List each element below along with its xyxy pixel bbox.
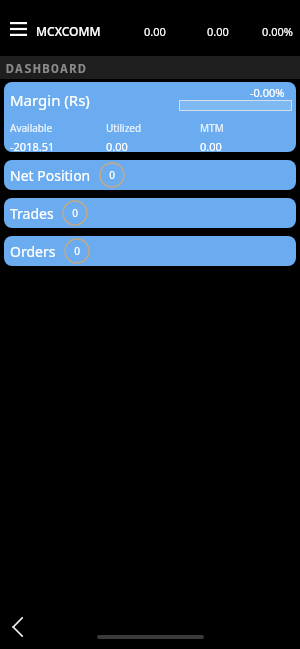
staticText: 0.00	[200, 139, 222, 152]
staticText: 0.00%	[262, 24, 293, 39]
staticText: DASHBOARD	[6, 59, 88, 77]
staticText: 0	[74, 244, 80, 258]
button[interactable]: Menu	[4, 18, 32, 40]
staticText: 0.00	[106, 139, 128, 152]
button[interactable]: Net Position	[4, 160, 296, 190]
staticText: 0.00	[207, 24, 229, 39]
button[interactable]: Margin (Rs)	[4, 82, 296, 152]
staticText: Utilized	[106, 121, 142, 135]
staticText: -0.00%	[250, 85, 285, 100]
button[interactable]: Trades	[4, 198, 296, 228]
staticText: 0.00	[144, 24, 166, 39]
staticText: -2018.51	[10, 139, 55, 152]
button[interactable]: Orders	[4, 236, 296, 266]
staticText: Available	[10, 121, 53, 135]
staticText: Trades	[10, 204, 54, 223]
staticText: 0	[109, 168, 115, 182]
staticText: Net Position	[10, 166, 91, 185]
staticText: Orders	[10, 242, 56, 261]
staticText: MCXCOMM	[36, 23, 101, 39]
staticText: MTM	[200, 121, 224, 135]
staticText: Margin (Rs)	[10, 90, 90, 110]
button[interactable]: Back	[0, 609, 36, 645]
staticText: 0	[72, 206, 78, 220]
